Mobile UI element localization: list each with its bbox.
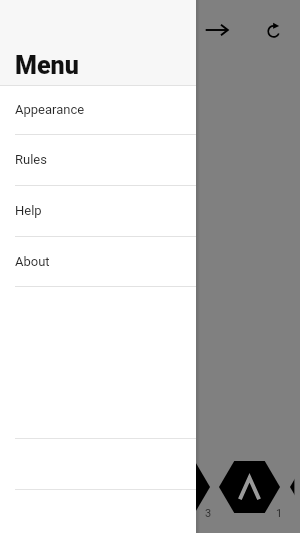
staticText: Appearance bbox=[15, 102, 85, 117]
button[interactable]: Level 1 bbox=[290, 461, 300, 513]
button[interactable]: Refresh bbox=[258, 15, 289, 46]
staticText: Help bbox=[15, 203, 42, 218]
button[interactable]: Level 2 bbox=[219, 461, 280, 513]
button[interactable]: Level 3 bbox=[149, 461, 210, 513]
button[interactable]: Rules bbox=[0, 135, 196, 186]
staticText: Rules bbox=[15, 152, 47, 167]
button[interactable]: Forward bbox=[200, 13, 234, 47]
button[interactable]: Help bbox=[0, 186, 196, 237]
staticText: About bbox=[15, 254, 50, 269]
button[interactable]: About bbox=[0, 237, 196, 287]
staticText: 1 bbox=[276, 507, 283, 520]
staticText: 3 bbox=[205, 507, 212, 520]
button[interactable]: Appearance bbox=[0, 86, 196, 135]
staticText: Menu bbox=[15, 51, 79, 80]
